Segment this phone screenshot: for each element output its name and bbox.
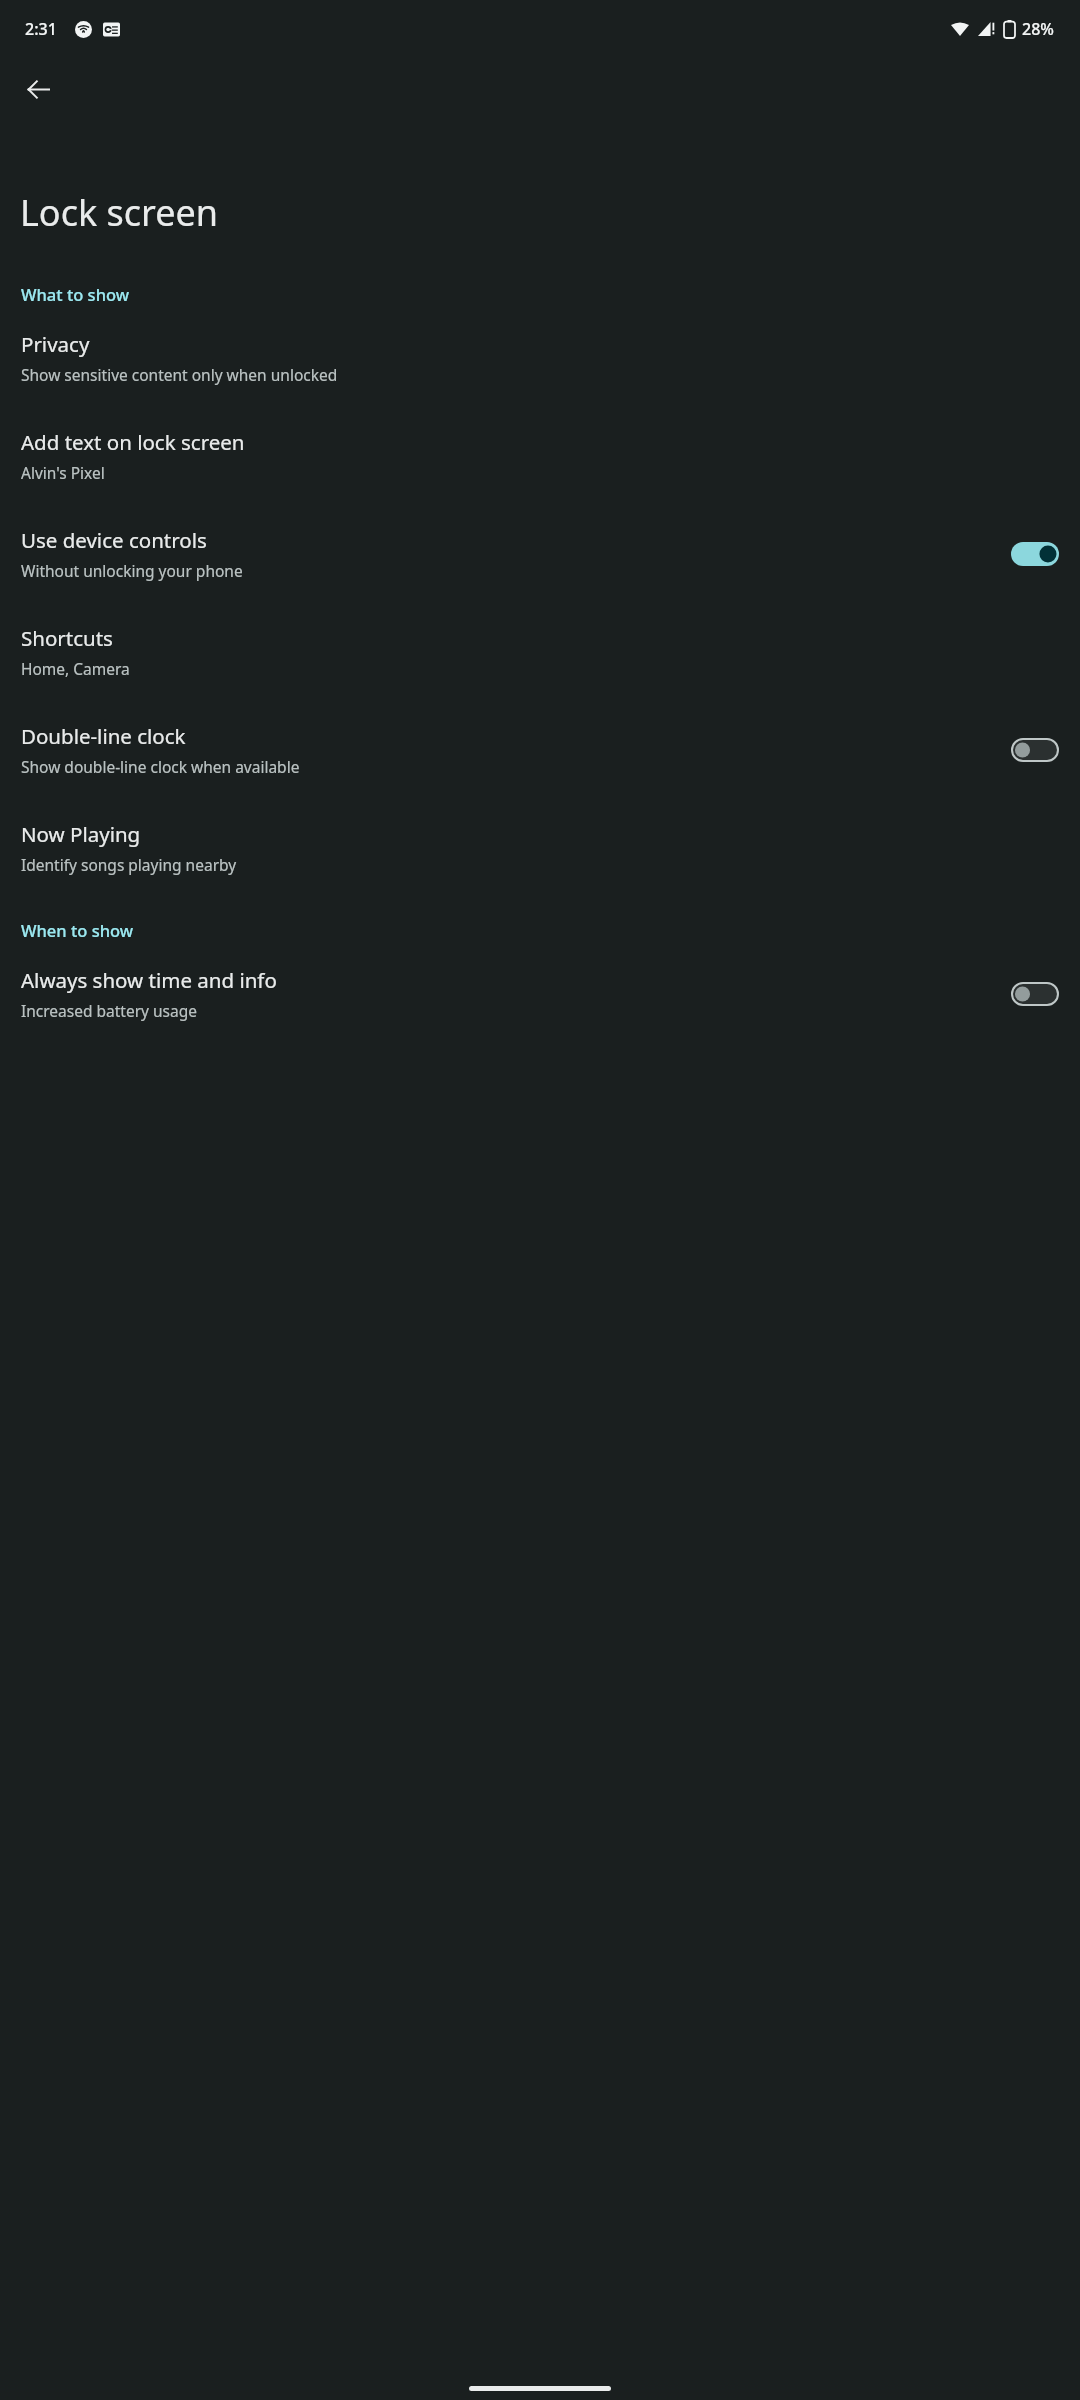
staticText: Increased battery usage [21, 1000, 198, 1021]
staticText: 28% [1022, 18, 1054, 40]
staticText: Add text on lock screen [21, 428, 245, 456]
button[interactable]: Back [14, 65, 62, 113]
staticText: 2:31 [25, 18, 57, 40]
staticText: Home, Camera [21, 658, 130, 679]
staticText: Lock screen [20, 188, 219, 237]
staticText: Without unlocking your phone [21, 560, 243, 581]
button[interactable]: Toggle on [1011, 542, 1059, 566]
button[interactable]: Double-line clock [0, 700, 1080, 798]
staticText: Privacy [21, 330, 90, 358]
staticText: Alvin's Pixel [21, 462, 105, 483]
button[interactable]: Privacy [0, 308, 1080, 406]
staticText: When to show [21, 919, 134, 941]
staticText: Now Playing [21, 820, 141, 848]
staticText: What to show [21, 283, 130, 305]
button[interactable]: Use device controls [0, 504, 1080, 602]
button[interactable]: Toggle off [1011, 982, 1059, 1006]
staticText: Show sensitive content only when unlocke… [21, 364, 338, 385]
staticText: Identify songs playing nearby [21, 854, 237, 875]
staticText: Shortcuts [21, 624, 113, 652]
button[interactable]: Always show time and info [0, 944, 1080, 1042]
staticText: Double-line clock [21, 722, 186, 750]
button[interactable]: Shortcuts [0, 602, 1080, 700]
button[interactable]: Now Playing [0, 798, 1080, 896]
button[interactable]: Toggle off [1011, 738, 1059, 762]
staticText: Always show time and info [21, 966, 277, 994]
staticText: Show double-line clock when available [21, 756, 300, 777]
button[interactable]: Add text on lock screen [0, 406, 1080, 504]
staticText: Use device controls [21, 526, 207, 554]
